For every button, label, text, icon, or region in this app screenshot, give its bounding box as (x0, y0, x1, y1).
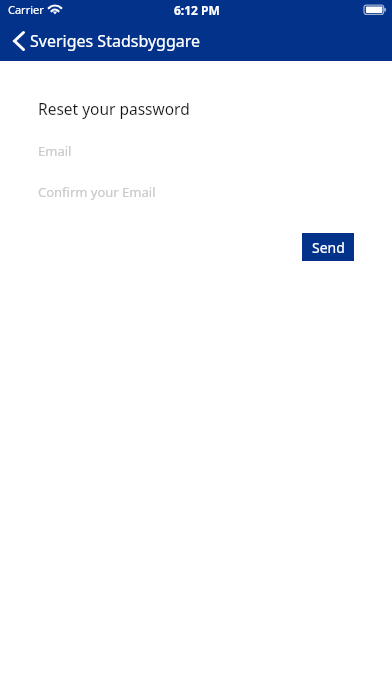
staticText: Sveriges Stadsbyggare (30, 30, 201, 52)
button[interactable]: Email (38, 139, 354, 163)
other: Back (13, 31, 25, 51)
button[interactable]: Confirm your Email (38, 180, 354, 204)
staticText: Confirm your Email (38, 183, 156, 201)
staticText: Reset your password (38, 98, 190, 119)
staticText: 6:12 PM (174, 2, 220, 18)
button[interactable]: Send (302, 233, 354, 261)
staticText: Carrier (8, 2, 44, 17)
button[interactable]: Back (7, 28, 207, 54)
staticText: Send (312, 238, 345, 257)
staticText: Email (38, 142, 72, 160)
